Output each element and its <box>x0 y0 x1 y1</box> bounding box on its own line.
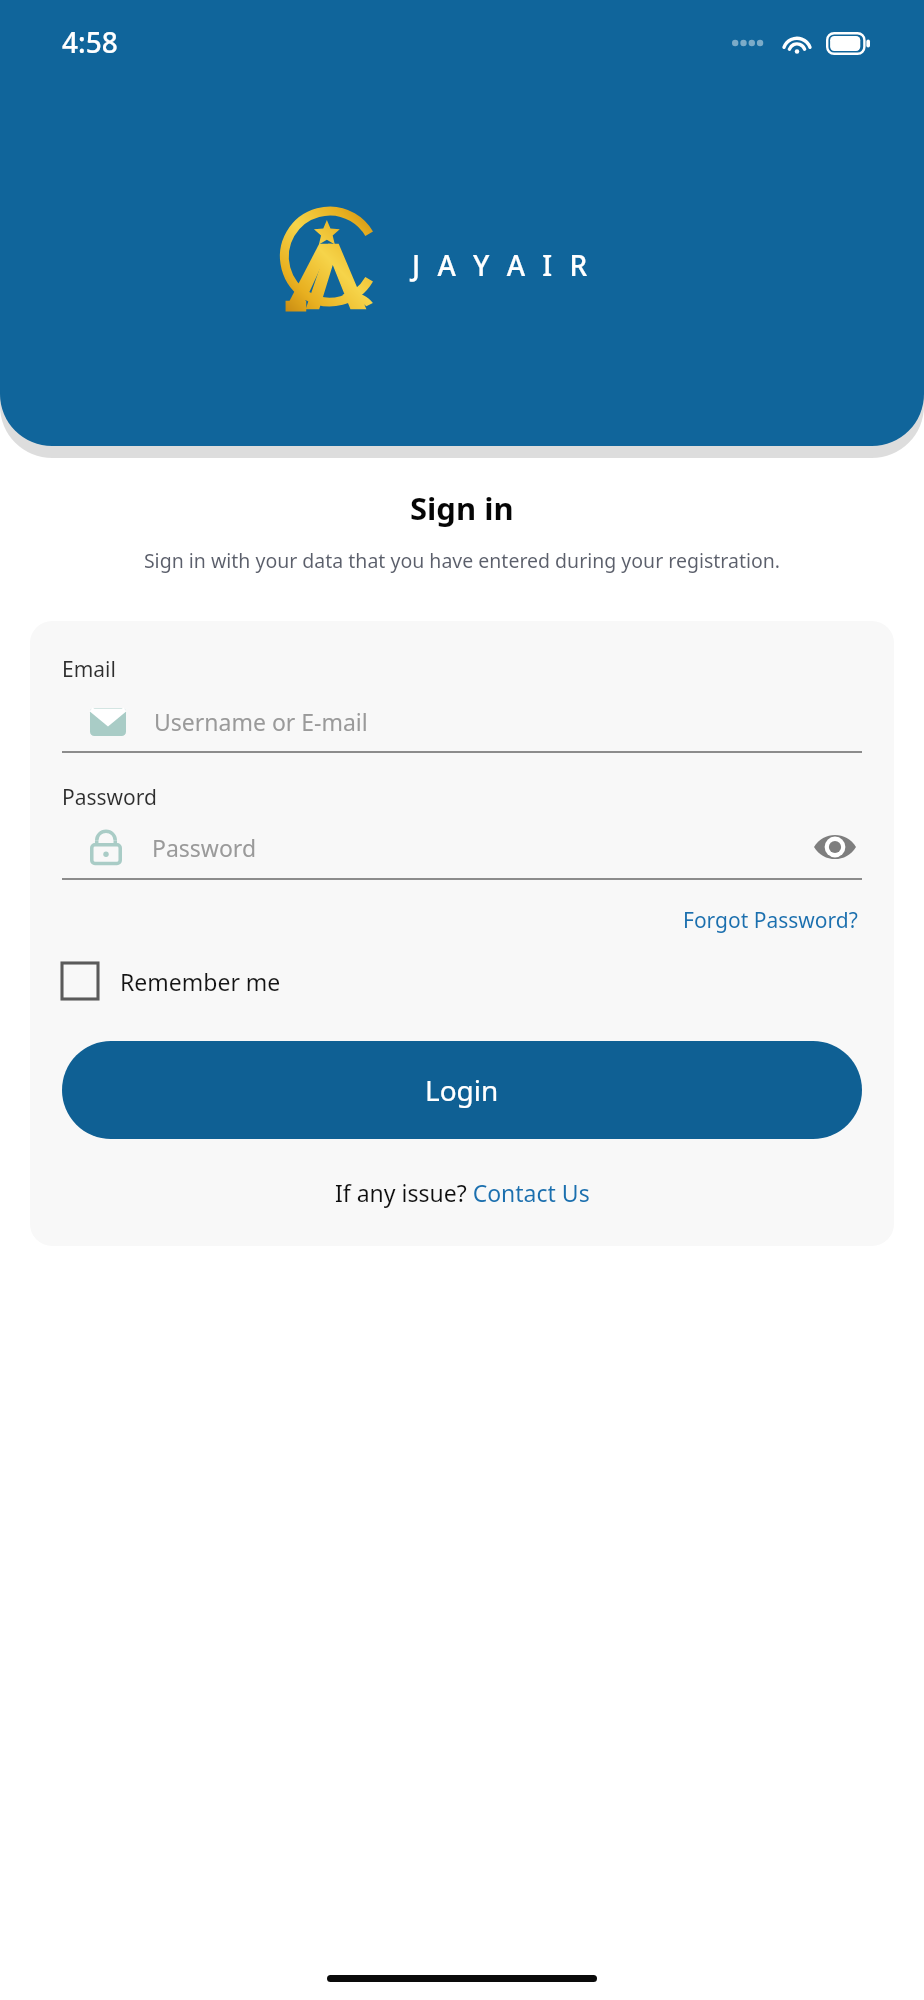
staticText: Email <box>62 655 116 684</box>
staticText: J A Y A I R <box>412 246 593 284</box>
staticText: Remember me <box>120 966 281 997</box>
staticText: Sign in with your data that you have ent… <box>140 547 784 574</box>
staticText: Sign in <box>410 487 514 529</box>
staticText: 4:58 <box>62 23 118 61</box>
staticText: Password <box>62 783 157 812</box>
button[interactable]: Show password <box>808 828 862 866</box>
button[interactable]: Password <box>62 826 862 878</box>
staticText: Forgot Password? <box>683 906 858 935</box>
button[interactable]: Login <box>62 1041 862 1139</box>
staticText: Login <box>425 1071 499 1109</box>
staticText: Password <box>152 832 257 863</box>
button[interactable]: If any issue? Contact Us <box>331 1173 594 1212</box>
staticText: Username or E-mail <box>154 706 368 737</box>
button[interactable]: Username or E-mail <box>62 702 862 751</box>
button[interactable]: Remember me <box>62 959 289 1003</box>
button[interactable]: Forgot Password? <box>679 902 862 939</box>
staticText: If any issue? Contact Us <box>335 1177 590 1208</box>
